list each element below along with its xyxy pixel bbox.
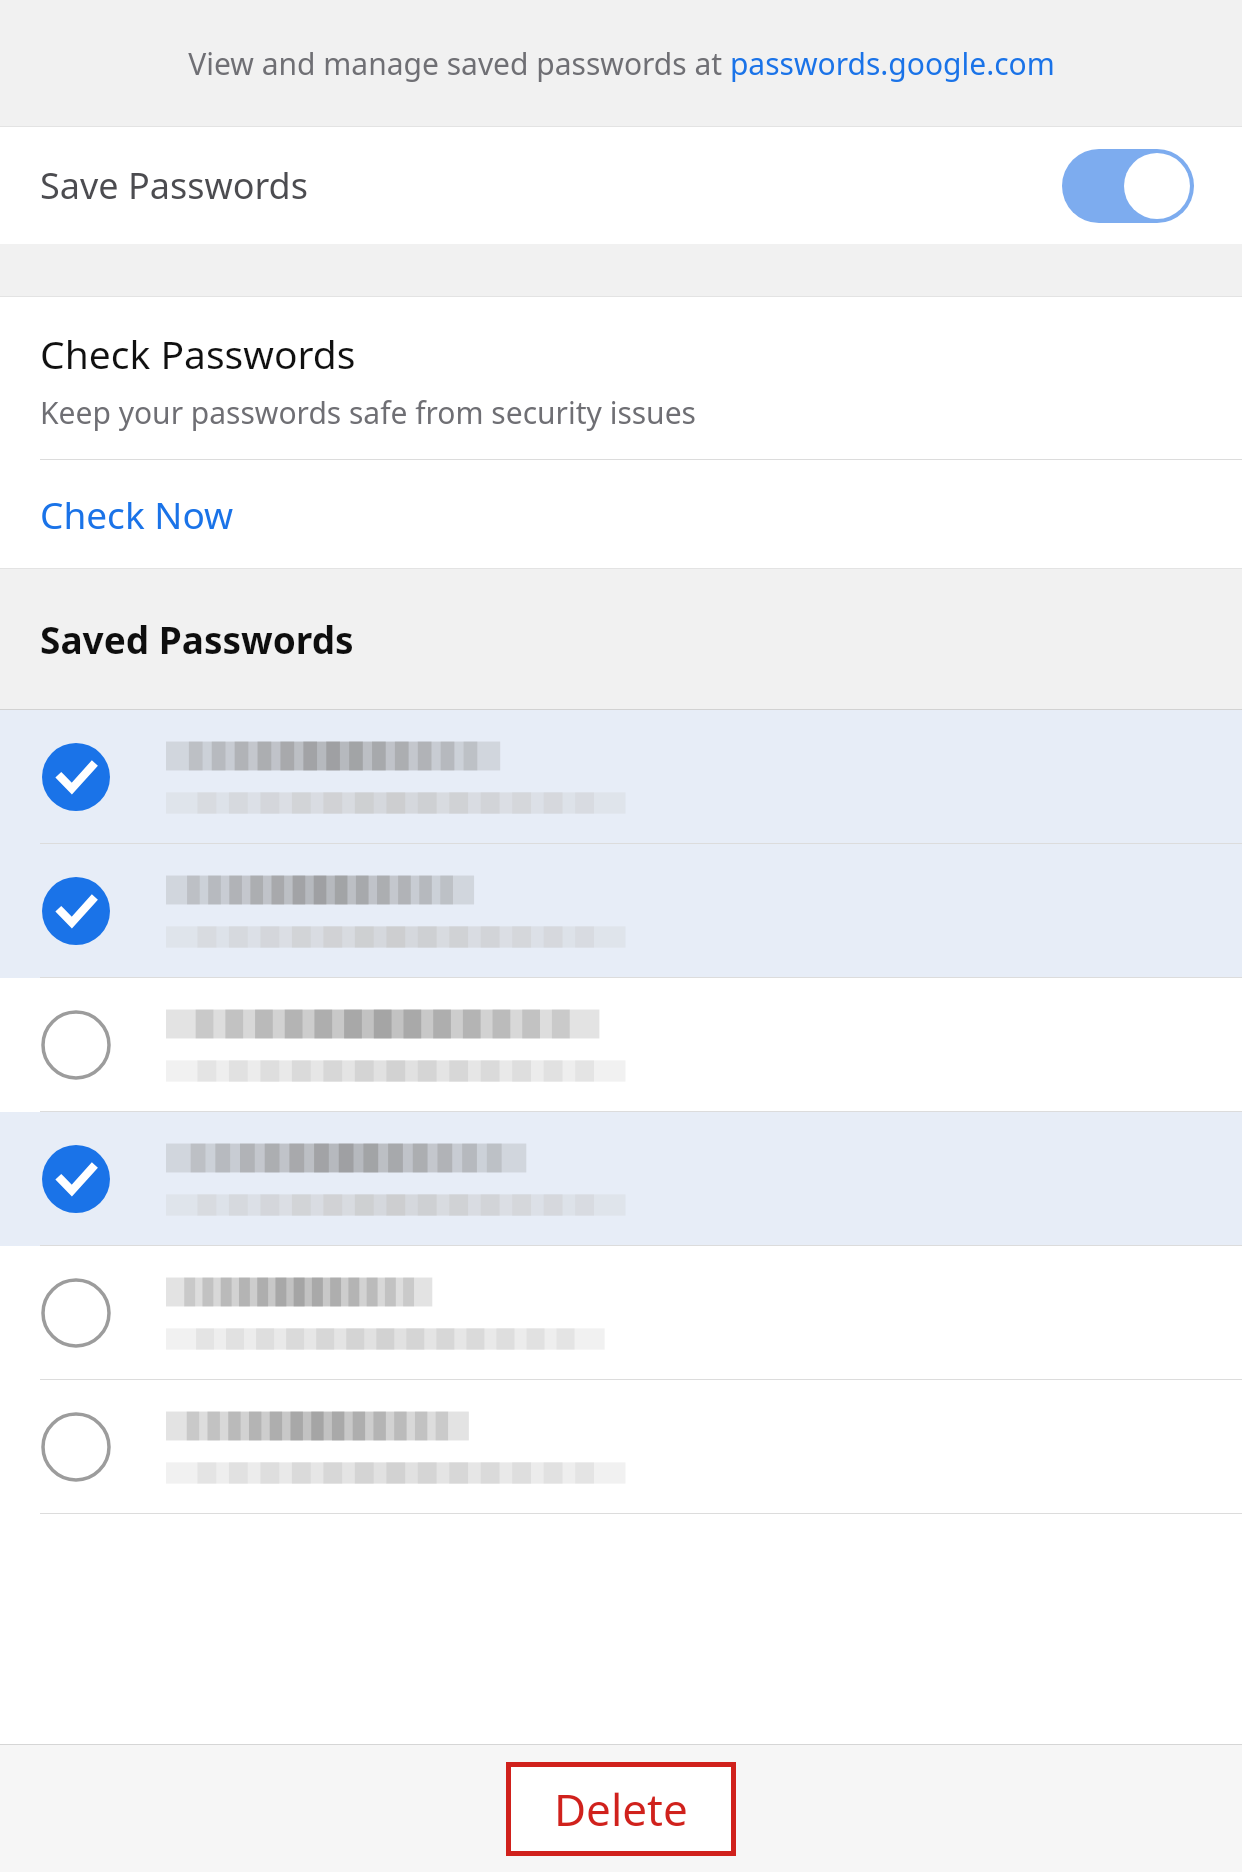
staticText: Save Passwords <box>40 161 308 210</box>
button[interactable]: Delete <box>506 1762 736 1856</box>
button[interactable]: Saved password entry <box>0 1246 1242 1380</box>
staticText: Check Passwords <box>40 327 356 380</box>
button[interactable]: Saved password entry <box>0 844 1242 978</box>
staticText: Keep your passwords safe from security i… <box>40 392 696 433</box>
staticText: Delete <box>554 1779 688 1839</box>
staticText: Saved Passwords <box>40 614 354 664</box>
button[interactable]: Saved password entry <box>0 1380 1242 1514</box>
button[interactable]: Saved password entry <box>0 1112 1242 1246</box>
button[interactable]: Saved password entry <box>0 710 1242 844</box>
button[interactable]: Check Passwords <box>0 297 1242 459</box>
button[interactable]: Saved password entry <box>0 978 1242 1112</box>
staticText: Check Now <box>40 489 234 539</box>
button[interactable]: View and manage saved passwords at passw… <box>0 0 1242 126</box>
button[interactable]: Save Passwords <box>0 127 1242 244</box>
button[interactable]: Check Now <box>0 460 1242 568</box>
button[interactable]: Save Passwords toggle <box>1062 149 1194 223</box>
staticText: View and manage saved passwords at passw… <box>188 43 1055 84</box>
